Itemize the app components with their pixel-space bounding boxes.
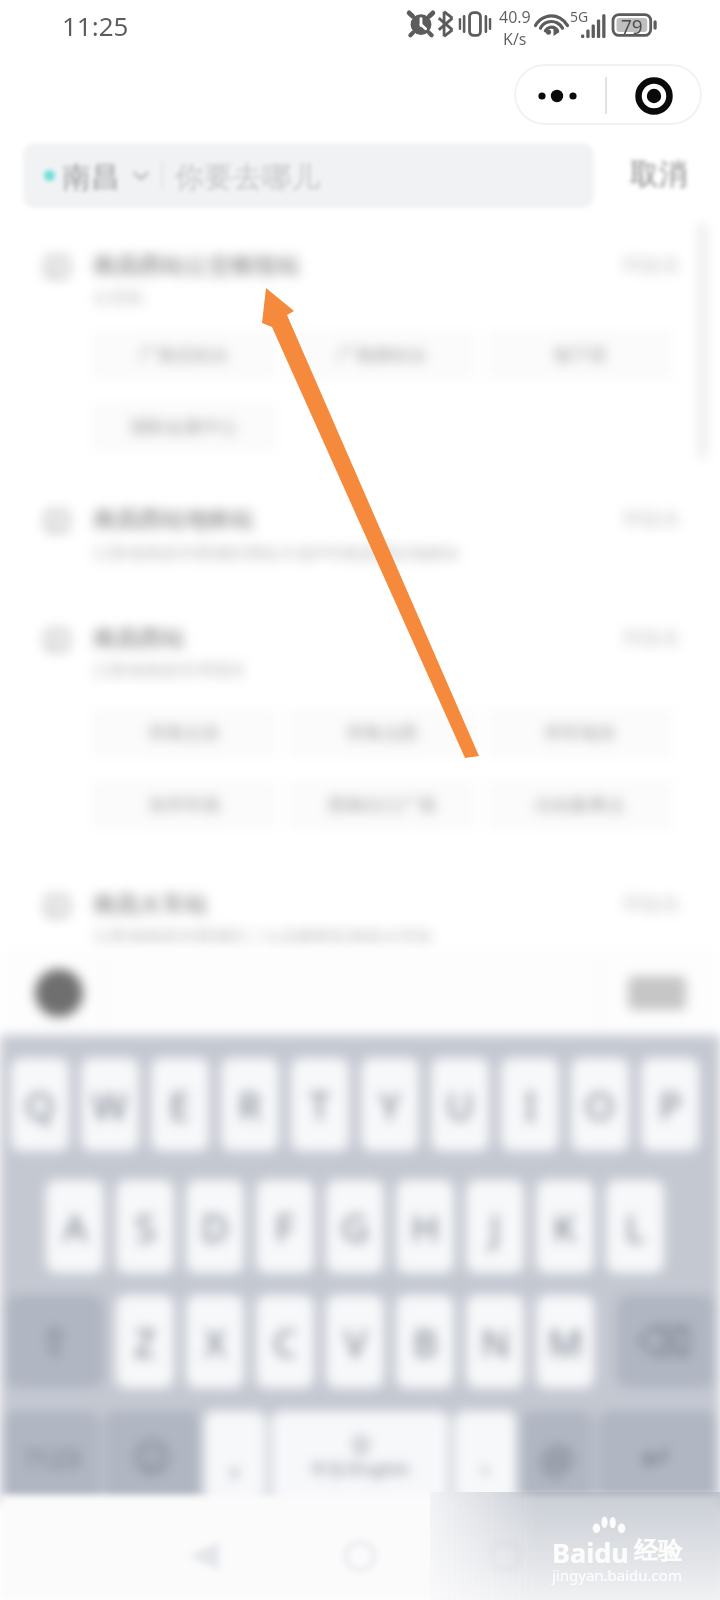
staticText: 5G (570, 7, 589, 26)
button[interactable]: X (186, 1295, 244, 1388)
button[interactable]: O (571, 1058, 629, 1151)
staticText: 公交站 (93, 287, 144, 308)
button[interactable]: 南昌 (23, 143, 594, 208)
button[interactable]: Q (11, 1058, 69, 1151)
staticText: 79 (621, 14, 643, 40)
staticText: U (446, 1079, 474, 1131)
staticText: 经验 (634, 1536, 682, 1566)
button[interactable]: C (256, 1295, 314, 1388)
button[interactable]: 广场南站台 (288, 330, 476, 380)
staticText: . (480, 1432, 491, 1484)
button[interactable]: 南昌火车站 (13, 884, 703, 955)
button[interactable]: Input method (35, 969, 83, 1017)
button[interactable]: space (271, 1411, 449, 1504)
button[interactable]: 取消 (604, 132, 714, 216)
button[interactable]: F (256, 1180, 314, 1273)
staticText: F (275, 1201, 295, 1253)
button[interactable]: @ (521, 1411, 593, 1504)
button[interactable]: R (221, 1058, 279, 1151)
button[interactable]: 南昌西站地铁站 (13, 499, 703, 589)
staticText: O (585, 1079, 615, 1131)
staticText: M (548, 1316, 583, 1368)
button[interactable]: 停靠点西 (288, 708, 476, 758)
staticText: ?123 (24, 1440, 80, 1475)
button[interactable]: 南昌西站公交枢纽站 (13, 245, 703, 335)
button[interactable]: Y (361, 1058, 419, 1151)
staticText: 东停车场 (148, 794, 220, 817)
staticText: 停车场东 (544, 722, 616, 745)
staticText: 江西省南昌市西湖区二七北路附近南昌火车站 (93, 926, 433, 947)
button[interactable]: 国际会展中心 (90, 402, 278, 452)
button[interactable]: H (396, 1180, 454, 1273)
button[interactable]: 出站换乘点 (486, 780, 674, 830)
staticText: P (659, 1079, 682, 1131)
staticText: 中文/English (311, 1457, 410, 1480)
button[interactable]: 地下层 (486, 330, 674, 380)
button[interactable]: A (46, 1180, 104, 1273)
button[interactable]: P (641, 1058, 699, 1151)
staticText: D (201, 1201, 229, 1253)
staticText: , (230, 1432, 241, 1484)
staticText: J (490, 1201, 501, 1253)
staticText: L (625, 1201, 645, 1253)
button[interactable]: ☺ (104, 1411, 200, 1504)
button[interactable]: Back (173, 1525, 235, 1587)
staticText: 取消 (630, 156, 688, 193)
button[interactable]: U (431, 1058, 489, 1151)
button[interactable]: 停靠点东 (90, 708, 278, 758)
button[interactable]: K (536, 1180, 594, 1273)
staticText: I (524, 1079, 537, 1131)
button[interactable]: Mini program menu (514, 64, 702, 125)
button[interactable]: Recents (474, 1525, 536, 1587)
staticText: K (553, 1201, 577, 1253)
button[interactable]: 东停车场 (90, 780, 278, 830)
staticText: C (273, 1316, 298, 1368)
button[interactable]: Hide keyboard (628, 976, 686, 1010)
button[interactable]: , (204, 1411, 266, 1504)
button[interactable]: ⌫ (616, 1295, 714, 1388)
staticText: ↵ (641, 1436, 673, 1480)
staticText: 广场南站台 (337, 344, 427, 367)
button[interactable]: T (291, 1058, 349, 1151)
staticText: 到这去 (623, 253, 680, 277)
staticText: 到这去 (623, 892, 680, 916)
button[interactable]: ?123 (4, 1411, 100, 1504)
staticText: 停靠点东 (148, 722, 220, 745)
button[interactable]: J (466, 1180, 524, 1273)
staticText: 江西省南昌市湾里区 (93, 660, 246, 681)
button[interactable]: M (536, 1295, 594, 1388)
staticText: K/s (503, 28, 527, 50)
button[interactable]: N (466, 1295, 524, 1388)
staticText: ☺ (132, 1436, 172, 1480)
staticText: W (92, 1079, 128, 1131)
staticText: 南昌 (62, 159, 120, 196)
button[interactable]: L (606, 1180, 664, 1273)
button[interactable]: 广场北站台 (90, 330, 278, 380)
button[interactable]: V (326, 1295, 384, 1388)
staticText: N (481, 1316, 510, 1368)
staticText: B (413, 1316, 438, 1368)
button[interactable]: W (81, 1058, 139, 1151)
staticText: 南昌西站公交枢纽站 (93, 251, 300, 280)
button[interactable]: Z (116, 1295, 174, 1388)
staticText: 广场北站台 (139, 344, 229, 367)
staticText: G (341, 1201, 369, 1253)
staticText: 出站换乘点 (535, 794, 625, 817)
button[interactable]: ↵ (598, 1411, 716, 1504)
button[interactable]: 西南出口广场 (288, 780, 476, 830)
button[interactable]: B (396, 1295, 454, 1388)
button[interactable]: . (454, 1411, 516, 1504)
button[interactable]: D (186, 1180, 244, 1273)
button[interactable]: ⇧ (6, 1295, 104, 1388)
button[interactable]: E (151, 1058, 209, 1151)
staticText: @ (540, 1432, 575, 1484)
button[interactable]: 南昌西站 (13, 618, 703, 708)
button[interactable]: 停车场东 (486, 708, 674, 758)
button[interactable]: G (326, 1180, 384, 1273)
staticText: 南昌西站地铁站 (93, 505, 254, 534)
button[interactable]: I (501, 1058, 559, 1151)
staticText: ⌫ (638, 1320, 692, 1364)
button[interactable]: S (116, 1180, 174, 1273)
staticText: 南昌火车站 (93, 890, 208, 919)
